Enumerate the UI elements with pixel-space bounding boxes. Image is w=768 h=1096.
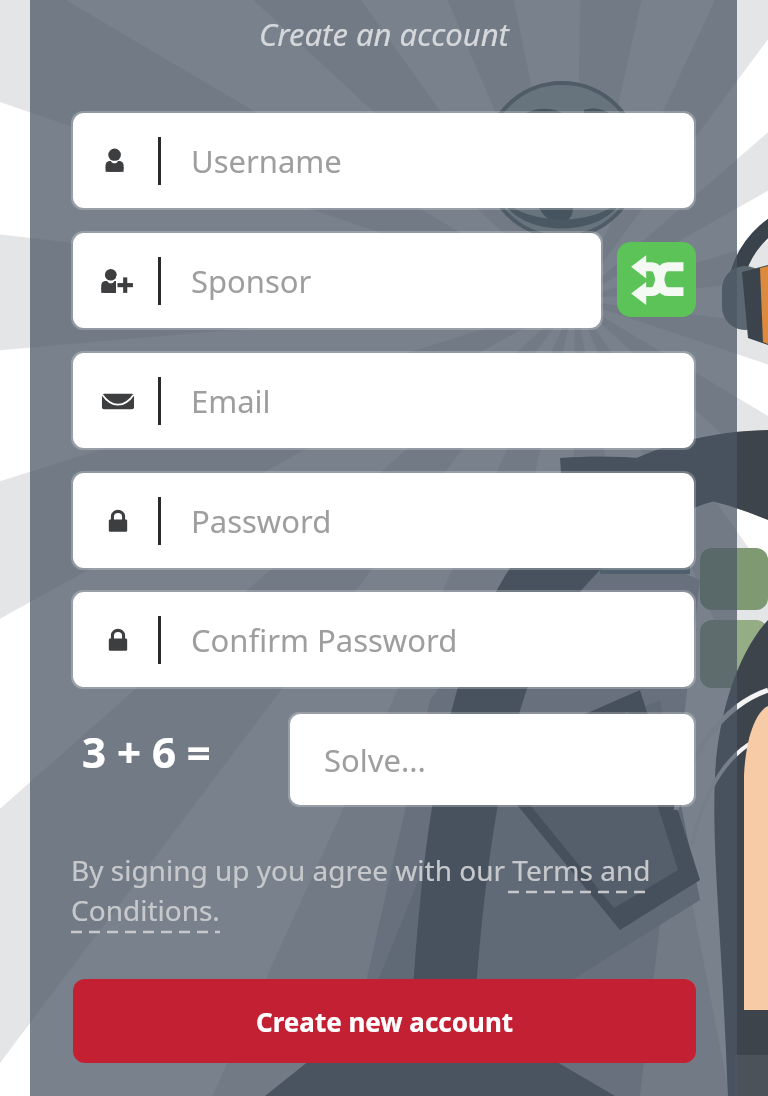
button[interactable]: Confirm Password: [73, 592, 694, 687]
button[interactable]: [505, 851, 650, 893]
button[interactable]: Username: [73, 113, 694, 208]
staticText: Sponsor: [191, 260, 312, 302]
button[interactable]: Create new account: [73, 979, 696, 1063]
staticText: Create an account: [259, 13, 509, 55]
staticText: 3 + 6 =: [82, 723, 211, 780]
staticText: Create new account: [256, 1004, 514, 1039]
staticText: Username: [191, 140, 342, 182]
button[interactable]: Password: [73, 473, 694, 568]
button[interactable]: Solve...: [290, 714, 694, 805]
button[interactable]: Sponsor: [73, 233, 601, 328]
staticText: Solve...: [324, 739, 426, 781]
staticText: Confirm Password: [191, 619, 458, 661]
button[interactable]: Email: [73, 353, 694, 448]
staticText: Email: [191, 380, 271, 422]
button[interactable]: [71, 891, 221, 933]
button[interactable]: Shuffle sponsor: [617, 242, 696, 317]
staticText: Password: [191, 500, 332, 542]
staticText: By signing up you agree with our Terms a…: [71, 851, 651, 930]
